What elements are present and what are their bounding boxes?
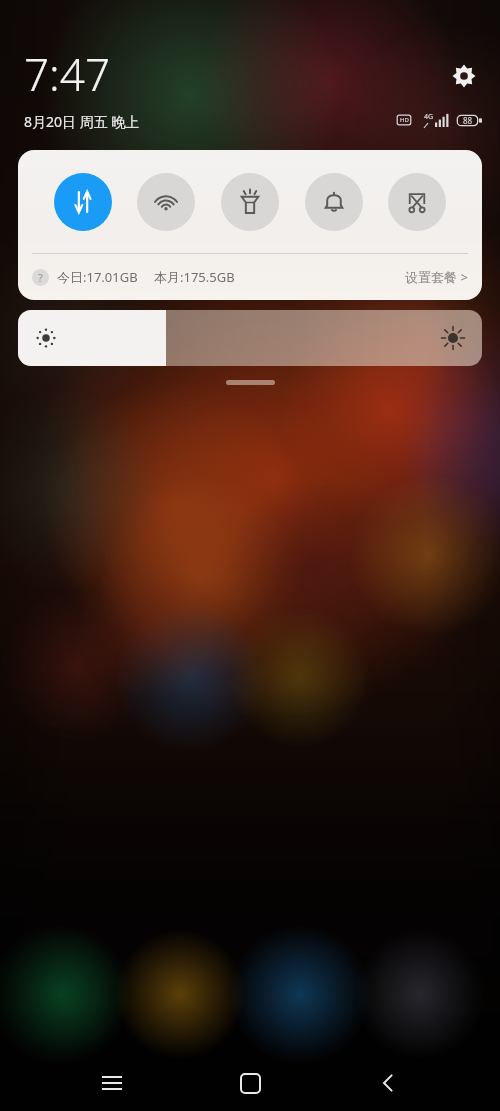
button[interactable]: Screenshot bbox=[388, 173, 446, 231]
staticText: 本月:175.5GB bbox=[154, 268, 235, 286]
staticText: ? bbox=[38, 270, 43, 285]
button[interactable]: Recents bbox=[86, 1057, 138, 1109]
button[interactable]: Home bbox=[224, 1057, 276, 1109]
button[interactable]: Wi-Fi bbox=[137, 173, 195, 231]
button[interactable]: Back bbox=[362, 1057, 414, 1109]
staticText: 88 bbox=[463, 115, 473, 126]
staticText: 7:47 bbox=[24, 44, 111, 104]
button[interactable]: Settings bbox=[446, 58, 482, 94]
staticText: 8月20日 周五 晚上 bbox=[24, 112, 140, 131]
button[interactable]: Do not disturb bbox=[305, 173, 363, 231]
staticText: HD bbox=[400, 116, 409, 124]
staticText: 今日:17.01GB bbox=[57, 268, 138, 286]
button[interactable]: Flashlight bbox=[221, 173, 279, 231]
button[interactable]: Brightness bbox=[18, 310, 482, 366]
button[interactable]: Mobile data bbox=[54, 173, 112, 231]
staticText: 设置套餐 > bbox=[405, 268, 468, 286]
staticText: 4G bbox=[424, 112, 434, 122]
button[interactable]: ? bbox=[18, 254, 482, 300]
